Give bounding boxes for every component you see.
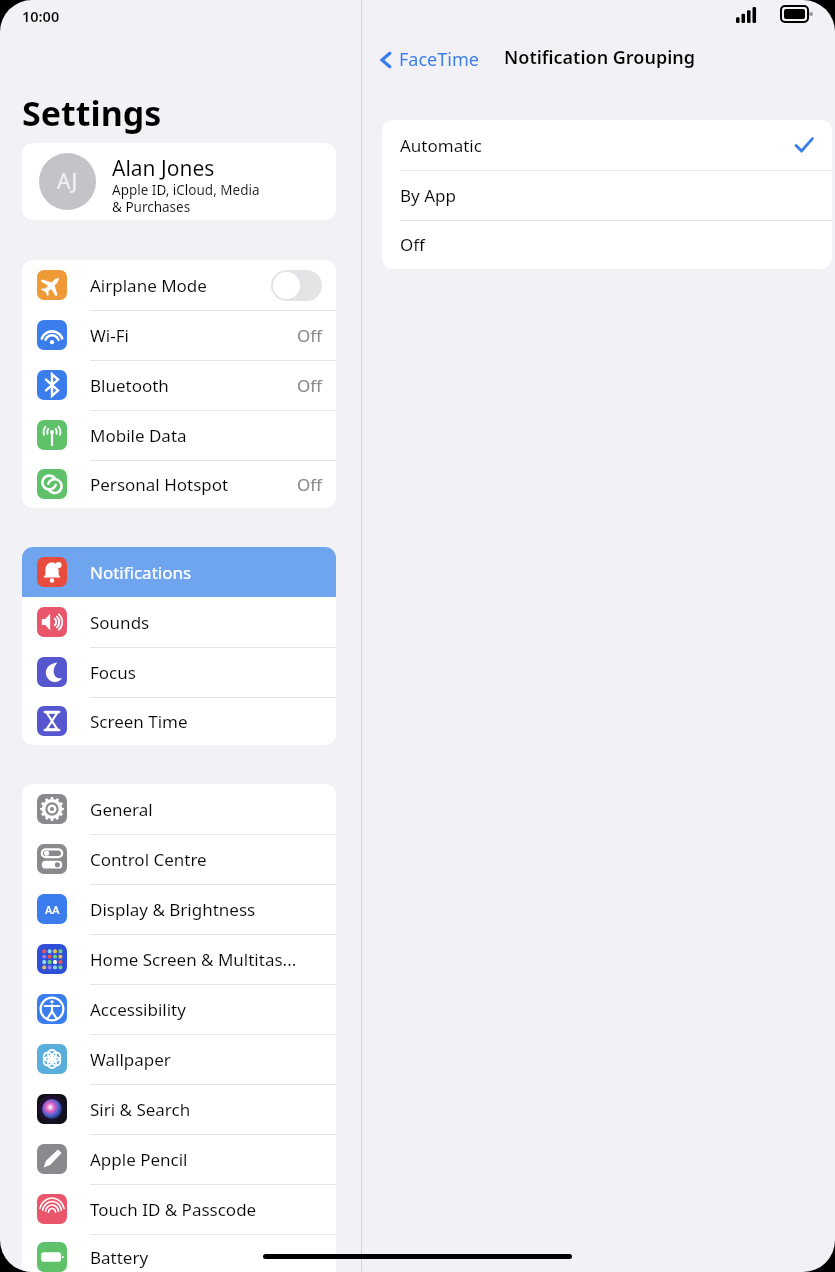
staticText: Off [297,374,322,397]
staticText: AJ [57,167,78,196]
staticText: Automatic [400,134,482,157]
staticText: Control Centre [90,848,207,871]
staticText: Screen Time [90,710,188,733]
staticText: Wallpaper [90,1048,171,1071]
staticText: Display & Brightness [90,898,256,921]
button[interactable]: Back to FaceTime [374,43,485,76]
button[interactable]: Automatic [382,120,832,170]
button[interactable]: Airplane Mode [22,260,336,310]
staticText: FaceTime [399,47,479,72]
staticText: Off [400,233,425,256]
button[interactable]: Home Screen & Multitas... [22,934,336,984]
button[interactable]: Wallpaper [22,1034,336,1084]
staticText: Accessibility [90,998,186,1021]
button[interactable]: Notifications [22,547,336,597]
button[interactable]: Sounds [22,597,336,647]
staticText: Focus [90,661,136,684]
staticText: Wi-Fi [90,324,129,347]
staticText: Touch ID & Passcode [90,1198,257,1221]
button[interactable]: Mobile Data [22,410,336,460]
staticText: Off [297,473,322,496]
button[interactable]: Screen Time [22,697,336,745]
staticText: Battery [90,1246,149,1269]
staticText: Home Screen & Multitas... [90,948,297,971]
button[interactable]: Touch ID & Passcode [22,1184,336,1234]
staticText: Airplane Mode [90,274,207,297]
button[interactable]: Siri & Search [22,1084,336,1134]
staticText: Personal Hotspot [90,473,229,496]
staticText: Notification Grouping [504,45,696,70]
button[interactable]: Off [382,220,832,269]
staticText: General [90,798,153,821]
button[interactable]: Focus [22,647,336,697]
button[interactable]: Battery [22,1234,336,1272]
staticText: Apple Pencil [90,1148,188,1171]
button[interactable]: Apple Pencil [22,1134,336,1184]
button[interactable]: General [22,784,336,834]
staticText: Apple ID, iCloud, Media & Purchases [112,181,260,216]
staticText: By App [400,184,456,207]
staticText: Sounds [90,611,150,634]
button[interactable]: By App [382,170,832,220]
staticText: Bluetooth [90,374,169,397]
button[interactable]: Bluetooth [22,360,336,410]
staticText: Settings [22,90,162,136]
button[interactable]: Personal Hotspot [22,460,336,508]
staticText: Mobile Data [90,424,187,447]
staticText: AA [45,902,60,917]
staticText: Notifications [90,561,192,584]
staticText: 10:00 [22,6,60,26]
button[interactable]: AJ [22,143,336,220]
button[interactable]: Accessibility [22,984,336,1034]
staticText: Alan Jones [112,154,215,183]
staticText: Siri & Search [90,1098,191,1121]
staticText: Off [297,324,322,347]
button[interactable]: Wi-Fi [22,310,336,360]
button[interactable] [271,270,322,301]
button[interactable]: Control Centre [22,834,336,884]
button[interactable]: AA [22,884,336,934]
